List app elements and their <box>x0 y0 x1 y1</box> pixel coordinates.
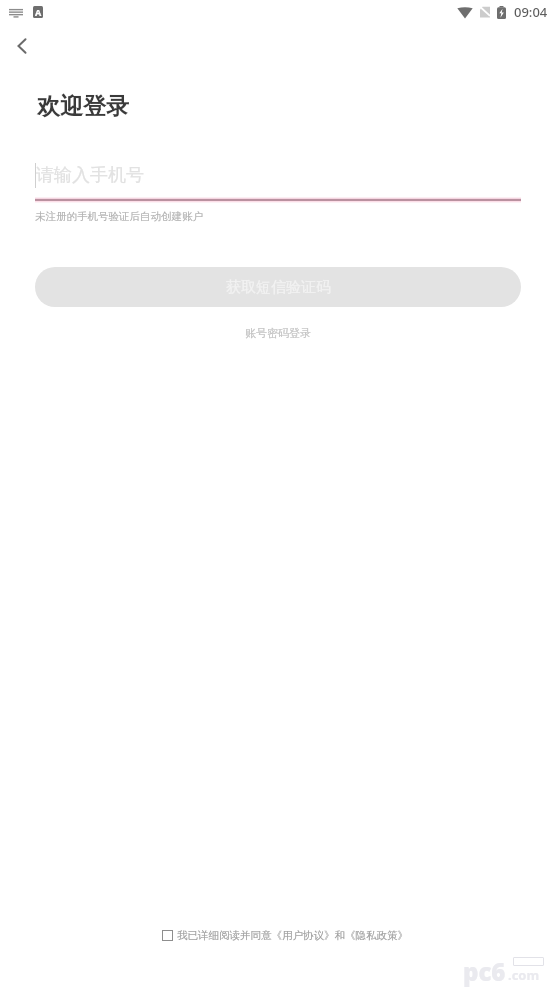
staticText: .com <box>508 966 540 984</box>
button[interactable]: 获取短信验证码 <box>35 267 521 307</box>
staticText: 我已详细阅读并同意《用户协议》和《隐私政策》 <box>177 929 408 942</box>
staticText: 账号密码登录 <box>245 326 311 340</box>
button[interactable]: 请输入手机号 <box>35 158 521 192</box>
staticText: 09:04 <box>514 3 548 21</box>
staticText: 请输入手机号 <box>36 164 144 187</box>
staticText: 欢迎登录 <box>37 92 129 121</box>
staticText: pc6 <box>463 955 506 988</box>
button[interactable]: Back <box>2 26 42 66</box>
staticText: A <box>35 6 42 18</box>
button[interactable]: 我已详细阅读并同意《用户协议》和《隐私政策》 <box>162 922 408 948</box>
staticText: 获取短信验证码 <box>226 278 331 297</box>
button[interactable]: 账号密码登录 <box>235 320 321 346</box>
staticText: 未注册的手机号验证后自动创建账户 <box>35 210 203 223</box>
